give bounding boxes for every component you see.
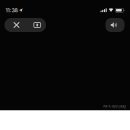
button[interactable]: Picture in Picture (28, 18, 46, 32)
staticText: 11:38 (5, 7, 17, 13)
button[interactable]: Mute (105, 18, 124, 32)
button[interactable]: Close (4, 18, 28, 32)
staticText: Park aya jaag (102, 104, 125, 108)
